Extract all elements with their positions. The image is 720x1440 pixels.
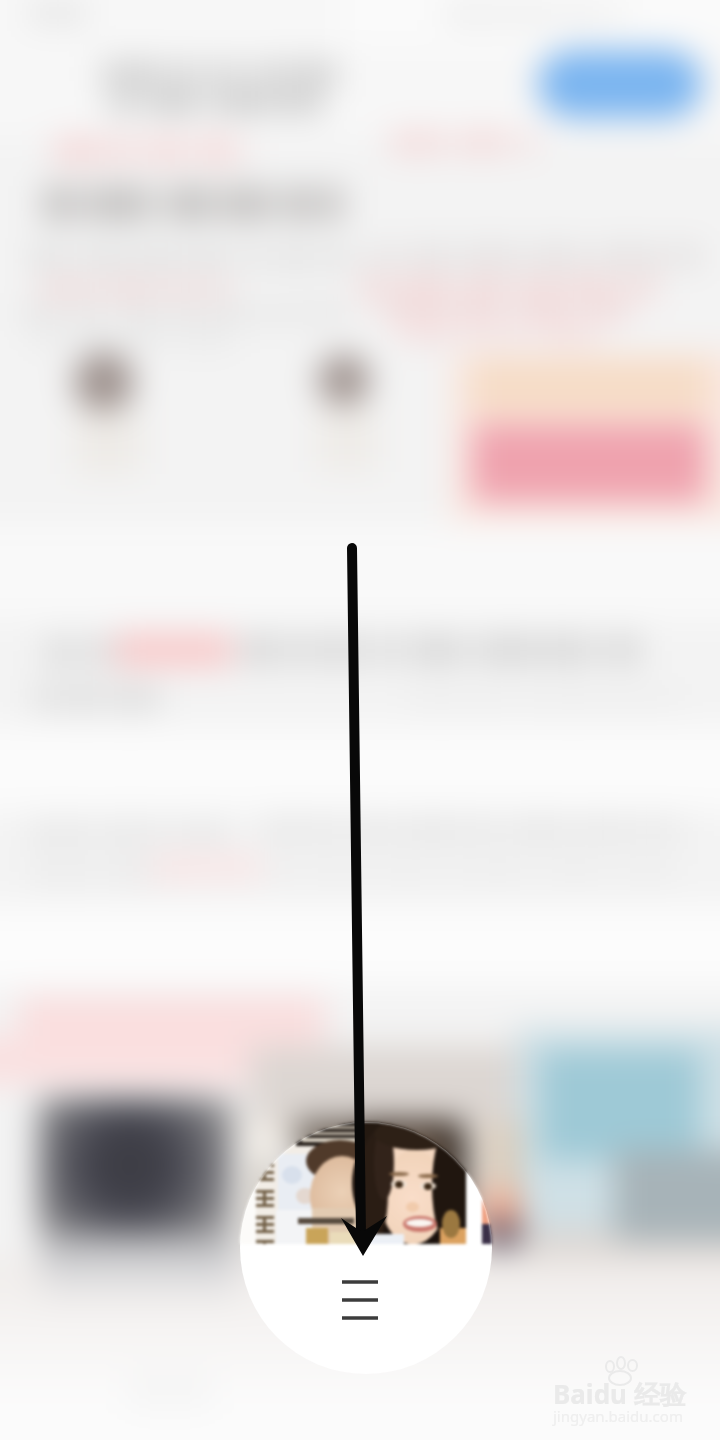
button[interactable]: Open menu	[330, 1265, 392, 1325]
staticText: jingyan.baidu.com	[553, 1406, 683, 1426]
staticText: Baidu 经验	[553, 1376, 686, 1412]
